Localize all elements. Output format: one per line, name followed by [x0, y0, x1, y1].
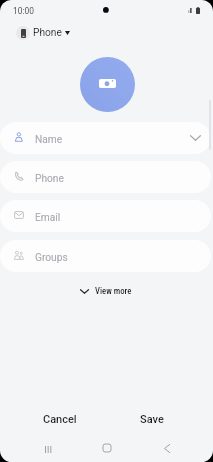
button[interactable]: Add photo — [80, 57, 135, 112]
staticText: Phone — [33, 27, 62, 39]
button[interactable]: Recents — [36, 437, 60, 461]
button[interactable]: Back — [155, 436, 179, 460]
button[interactable]: Email — [0, 200, 211, 232]
staticText: Name — [35, 134, 63, 146]
button[interactable]: Cancel — [15, 406, 105, 432]
button[interactable]: Groups — [0, 240, 211, 272]
staticText: View more — [95, 286, 132, 296]
button[interactable]: View more — [78, 284, 134, 298]
button[interactable]: Phone — [0, 161, 211, 193]
staticText: Email — [35, 212, 61, 224]
button[interactable]: Save — [107, 406, 197, 432]
button[interactable]: Name — [0, 122, 211, 154]
staticText: Save — [140, 413, 164, 426]
staticText: 10:00 — [13, 6, 34, 16]
staticText: Phone — [35, 173, 64, 185]
staticText: Groups — [35, 252, 68, 264]
button[interactable]: Phone — [12, 23, 74, 43]
button[interactable]: Home — [95, 436, 119, 460]
staticText: Cancel — [43, 413, 77, 426]
